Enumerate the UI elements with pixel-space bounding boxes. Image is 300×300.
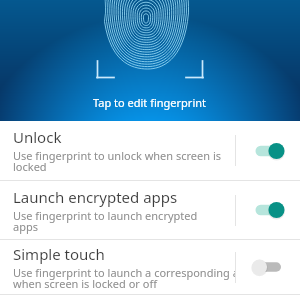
staticText: Simple touch: [13, 244, 105, 264]
staticText: Launch encrypted apps: [13, 187, 178, 207]
staticText: Use fingerprint to launch encrypted apps: [13, 208, 198, 234]
staticText: Use fingerprint to launch a correspondin…: [13, 265, 235, 291]
button[interactable]: Edit fingerprint: [0, 0, 300, 121]
button[interactable]: Switch on: [236, 121, 300, 180]
staticText: Tap to edit fingerprint: [93, 95, 207, 110]
button[interactable]: Simple touch: [0, 240, 300, 294]
button[interactable]: Unlock: [0, 121, 300, 180]
button[interactable]: Launch encrypted apps: [0, 181, 300, 239]
staticText: Use fingerprint to unlock when screen is…: [13, 148, 222, 174]
button[interactable]: Switch off: [236, 240, 300, 294]
button[interactable]: Switch on: [236, 181, 300, 239]
staticText: Unlock: [13, 127, 62, 147]
